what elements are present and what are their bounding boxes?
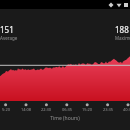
staticText: 188: [115, 24, 129, 35]
staticText: 5:20: [0, 107, 15, 112]
staticText: 06:35: [58, 107, 76, 112]
other: Location: [108, 2, 114, 8]
staticText: 14:08: [17, 107, 35, 112]
staticText: 151: [0, 24, 14, 35]
staticText: 23:35: [99, 107, 117, 112]
other: Battery: [124, 2, 128, 8]
staticText: Average: [0, 35, 18, 41]
staticText: Maximum: [115, 35, 130, 41]
other: Wi-Fi: [116, 2, 122, 8]
staticText: 22:30: [37, 107, 55, 112]
staticText: 40:30: [119, 107, 130, 112]
staticText: 15:20: [78, 107, 96, 112]
staticText: Time (hours): [50, 115, 80, 122]
